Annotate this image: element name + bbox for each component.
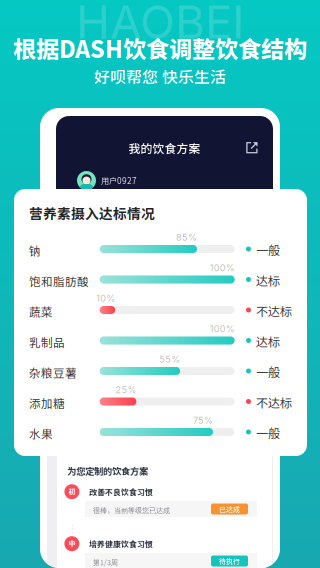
- staticText: 第1/3周: [93, 557, 118, 567]
- staticText: 100%: [210, 323, 235, 334]
- staticText: 不达标: [256, 302, 292, 320]
- staticText: 10%: [96, 293, 115, 304]
- staticText: 初: [68, 486, 75, 496]
- staticText: 待执行: [219, 556, 240, 566]
- staticText: 乳制品: [29, 333, 65, 350]
- staticText: 钠: [29, 242, 41, 259]
- staticText: 水果: [29, 425, 53, 442]
- staticText: HAOBEI: [76, 0, 244, 49]
- staticText: 55%: [159, 354, 180, 365]
- button[interactable]: 中: [57, 533, 262, 568]
- staticText: 一般: [256, 424, 280, 442]
- staticText: 中: [68, 538, 75, 548]
- staticText: 85%: [176, 232, 197, 243]
- button[interactable]: 分享: [242, 138, 262, 158]
- staticText: 为您定制的饮食方案: [67, 464, 148, 477]
- staticText: 蔬菜: [29, 303, 53, 320]
- staticText: 达标: [256, 271, 280, 289]
- staticText: 75%: [193, 415, 213, 426]
- staticText: 用户0927: [101, 174, 137, 186]
- staticText: 根据DASH饮食调整饮食结构: [13, 31, 307, 65]
- staticText: 我的饮食方案: [128, 139, 200, 156]
- staticText: 不达标: [256, 393, 292, 411]
- staticText: 很棒，当前等级您已达成: [93, 505, 170, 515]
- staticText: 改善不良饮食习惯: [89, 486, 153, 497]
- staticText: 好呗帮您 快乐生活: [94, 64, 226, 87]
- button[interactable]: 初: [57, 481, 262, 525]
- staticText: 杂粮豆薯: [29, 364, 77, 381]
- staticText: 25%: [115, 384, 136, 395]
- staticText: 培养健康饮食习惯: [89, 538, 153, 549]
- staticText: 一般: [256, 241, 280, 259]
- staticText: 100%: [210, 262, 235, 273]
- staticText: 添加糖: [29, 394, 65, 411]
- staticText: 一般: [256, 363, 280, 381]
- staticText: 已达成: [219, 504, 240, 514]
- staticText: 达标: [256, 332, 280, 350]
- staticText: 饱和脂肪酸: [29, 272, 89, 289]
- staticText: 营养素摄入达标情况: [29, 203, 155, 223]
